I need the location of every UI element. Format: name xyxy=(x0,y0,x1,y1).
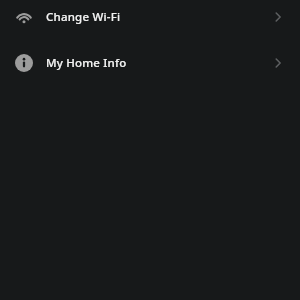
staticText: My Home Info xyxy=(46,55,269,71)
other: Wi-Fi xyxy=(15,8,33,26)
button[interactable]: Wi-Fi xyxy=(0,0,300,34)
button[interactable]: My Home Info xyxy=(0,46,300,80)
staticText: Change Wi-Fi xyxy=(46,9,269,25)
other: Open xyxy=(269,8,287,26)
other: Open xyxy=(269,54,287,72)
other: My Home Info xyxy=(15,54,33,72)
